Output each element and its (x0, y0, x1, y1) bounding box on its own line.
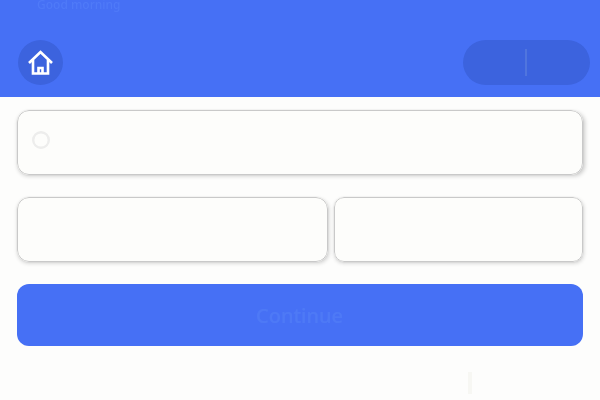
button[interactable]: Recent item (17, 197, 328, 262)
button[interactable]: Search your library (17, 110, 583, 175)
button[interactable]: Home (18, 40, 63, 85)
staticText: Good morning (37, 0, 121, 12)
button[interactable]: Continue (17, 284, 583, 346)
button[interactable]: Search (463, 40, 590, 85)
staticText: Continue (256, 302, 344, 329)
button[interactable]: Saved item (334, 197, 583, 262)
